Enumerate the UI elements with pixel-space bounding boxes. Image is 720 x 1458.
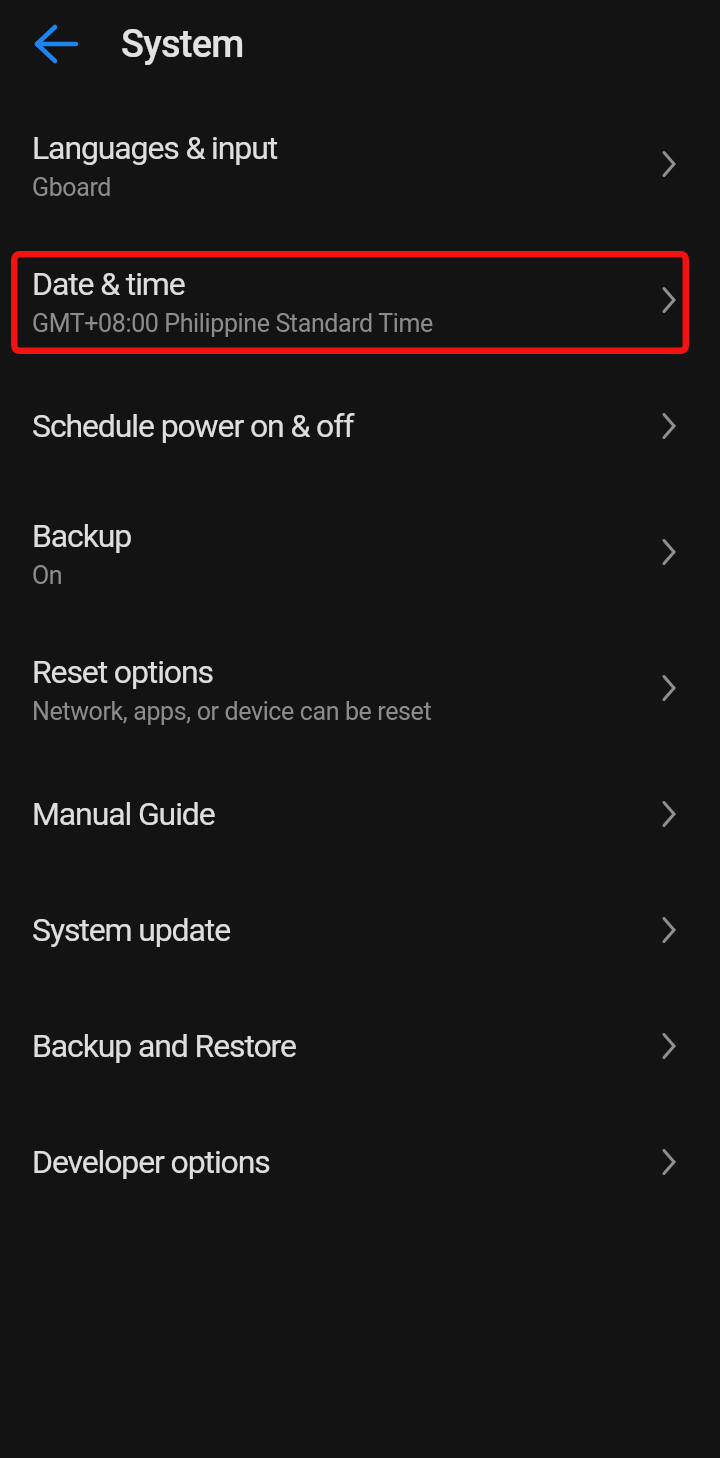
staticText: Network, apps, or device can be reset xyxy=(32,697,432,726)
staticText: Reset options xyxy=(32,653,213,691)
staticText: Date & time xyxy=(32,265,185,303)
button[interactable]: Date & time xyxy=(0,232,720,368)
staticText: Backup and Restore xyxy=(32,1027,296,1065)
button[interactable]: Backup and Restore xyxy=(0,988,720,1104)
staticText: System update xyxy=(32,911,231,949)
staticText: Manual Guide xyxy=(32,795,215,833)
staticText: Gboard xyxy=(32,173,112,202)
button[interactable]: Languages & input xyxy=(0,96,720,232)
button[interactable]: Manual Guide xyxy=(0,756,720,872)
staticText: Backup xyxy=(32,517,132,555)
button[interactable]: Schedule power on & off xyxy=(0,368,720,484)
button[interactable]: System update xyxy=(0,872,720,988)
staticText: System xyxy=(121,22,244,67)
staticText: GMT+08:00 Philippine Standard Time xyxy=(32,309,433,338)
button[interactable]: Reset options xyxy=(0,620,720,756)
button[interactable]: Backup xyxy=(0,484,720,620)
button[interactable] xyxy=(30,21,82,67)
staticText: On xyxy=(32,561,63,590)
button[interactable]: Developer options xyxy=(0,1104,720,1220)
staticText: Languages & input xyxy=(32,129,278,167)
staticText: Developer options xyxy=(32,1143,270,1181)
staticText: Schedule power on & off xyxy=(32,407,354,445)
